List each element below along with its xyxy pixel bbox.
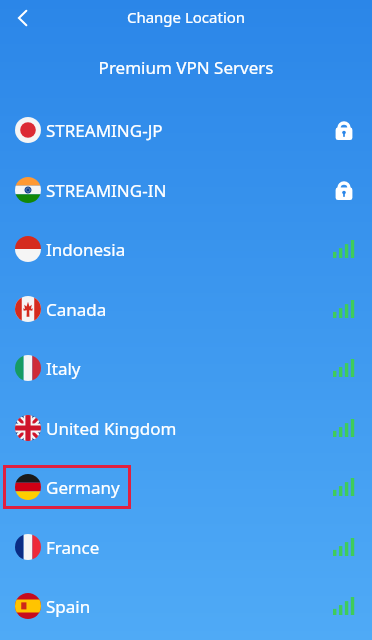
button[interactable]: Spain: [0, 584, 372, 628]
button[interactable]: Signal strength: [316, 525, 372, 569]
staticText: Italy: [46, 357, 81, 380]
staticText: Change Location: [0, 7, 372, 27]
button[interactable]: Signal strength: [316, 406, 372, 450]
staticText: Spain: [46, 595, 91, 618]
staticText: Premium VPN Servers: [0, 56, 372, 79]
button[interactable]: STREAMING-JP: [0, 108, 372, 152]
button[interactable]: Signal strength: [316, 465, 372, 509]
button[interactable]: France: [0, 525, 372, 569]
button[interactable]: STREAMING-IN: [0, 168, 372, 212]
staticText: France: [46, 536, 100, 559]
button[interactable]: Signal strength: [316, 584, 372, 628]
button[interactable]: Signal strength: [316, 227, 372, 271]
staticText: STREAMING-JP: [46, 119, 163, 142]
staticText: United Kingdom: [46, 417, 177, 440]
button[interactable]: Back: [10, 5, 36, 31]
button[interactable]: Indonesia: [0, 227, 372, 271]
button[interactable]: United Kingdom: [0, 406, 372, 450]
staticText: Canada: [46, 298, 107, 321]
button[interactable]: Italy: [0, 346, 372, 390]
staticText: STREAMING-IN: [46, 179, 167, 202]
staticText: Indonesia: [46, 238, 126, 261]
staticText: Germany: [46, 476, 120, 499]
button[interactable]: Signal strength: [316, 287, 372, 331]
button[interactable]: Premium locked: [316, 168, 372, 212]
button[interactable]: Premium locked: [316, 108, 372, 152]
button[interactable]: Signal strength: [316, 346, 372, 390]
button[interactable]: Canada: [0, 287, 372, 331]
button[interactable]: Germany: [0, 465, 372, 509]
